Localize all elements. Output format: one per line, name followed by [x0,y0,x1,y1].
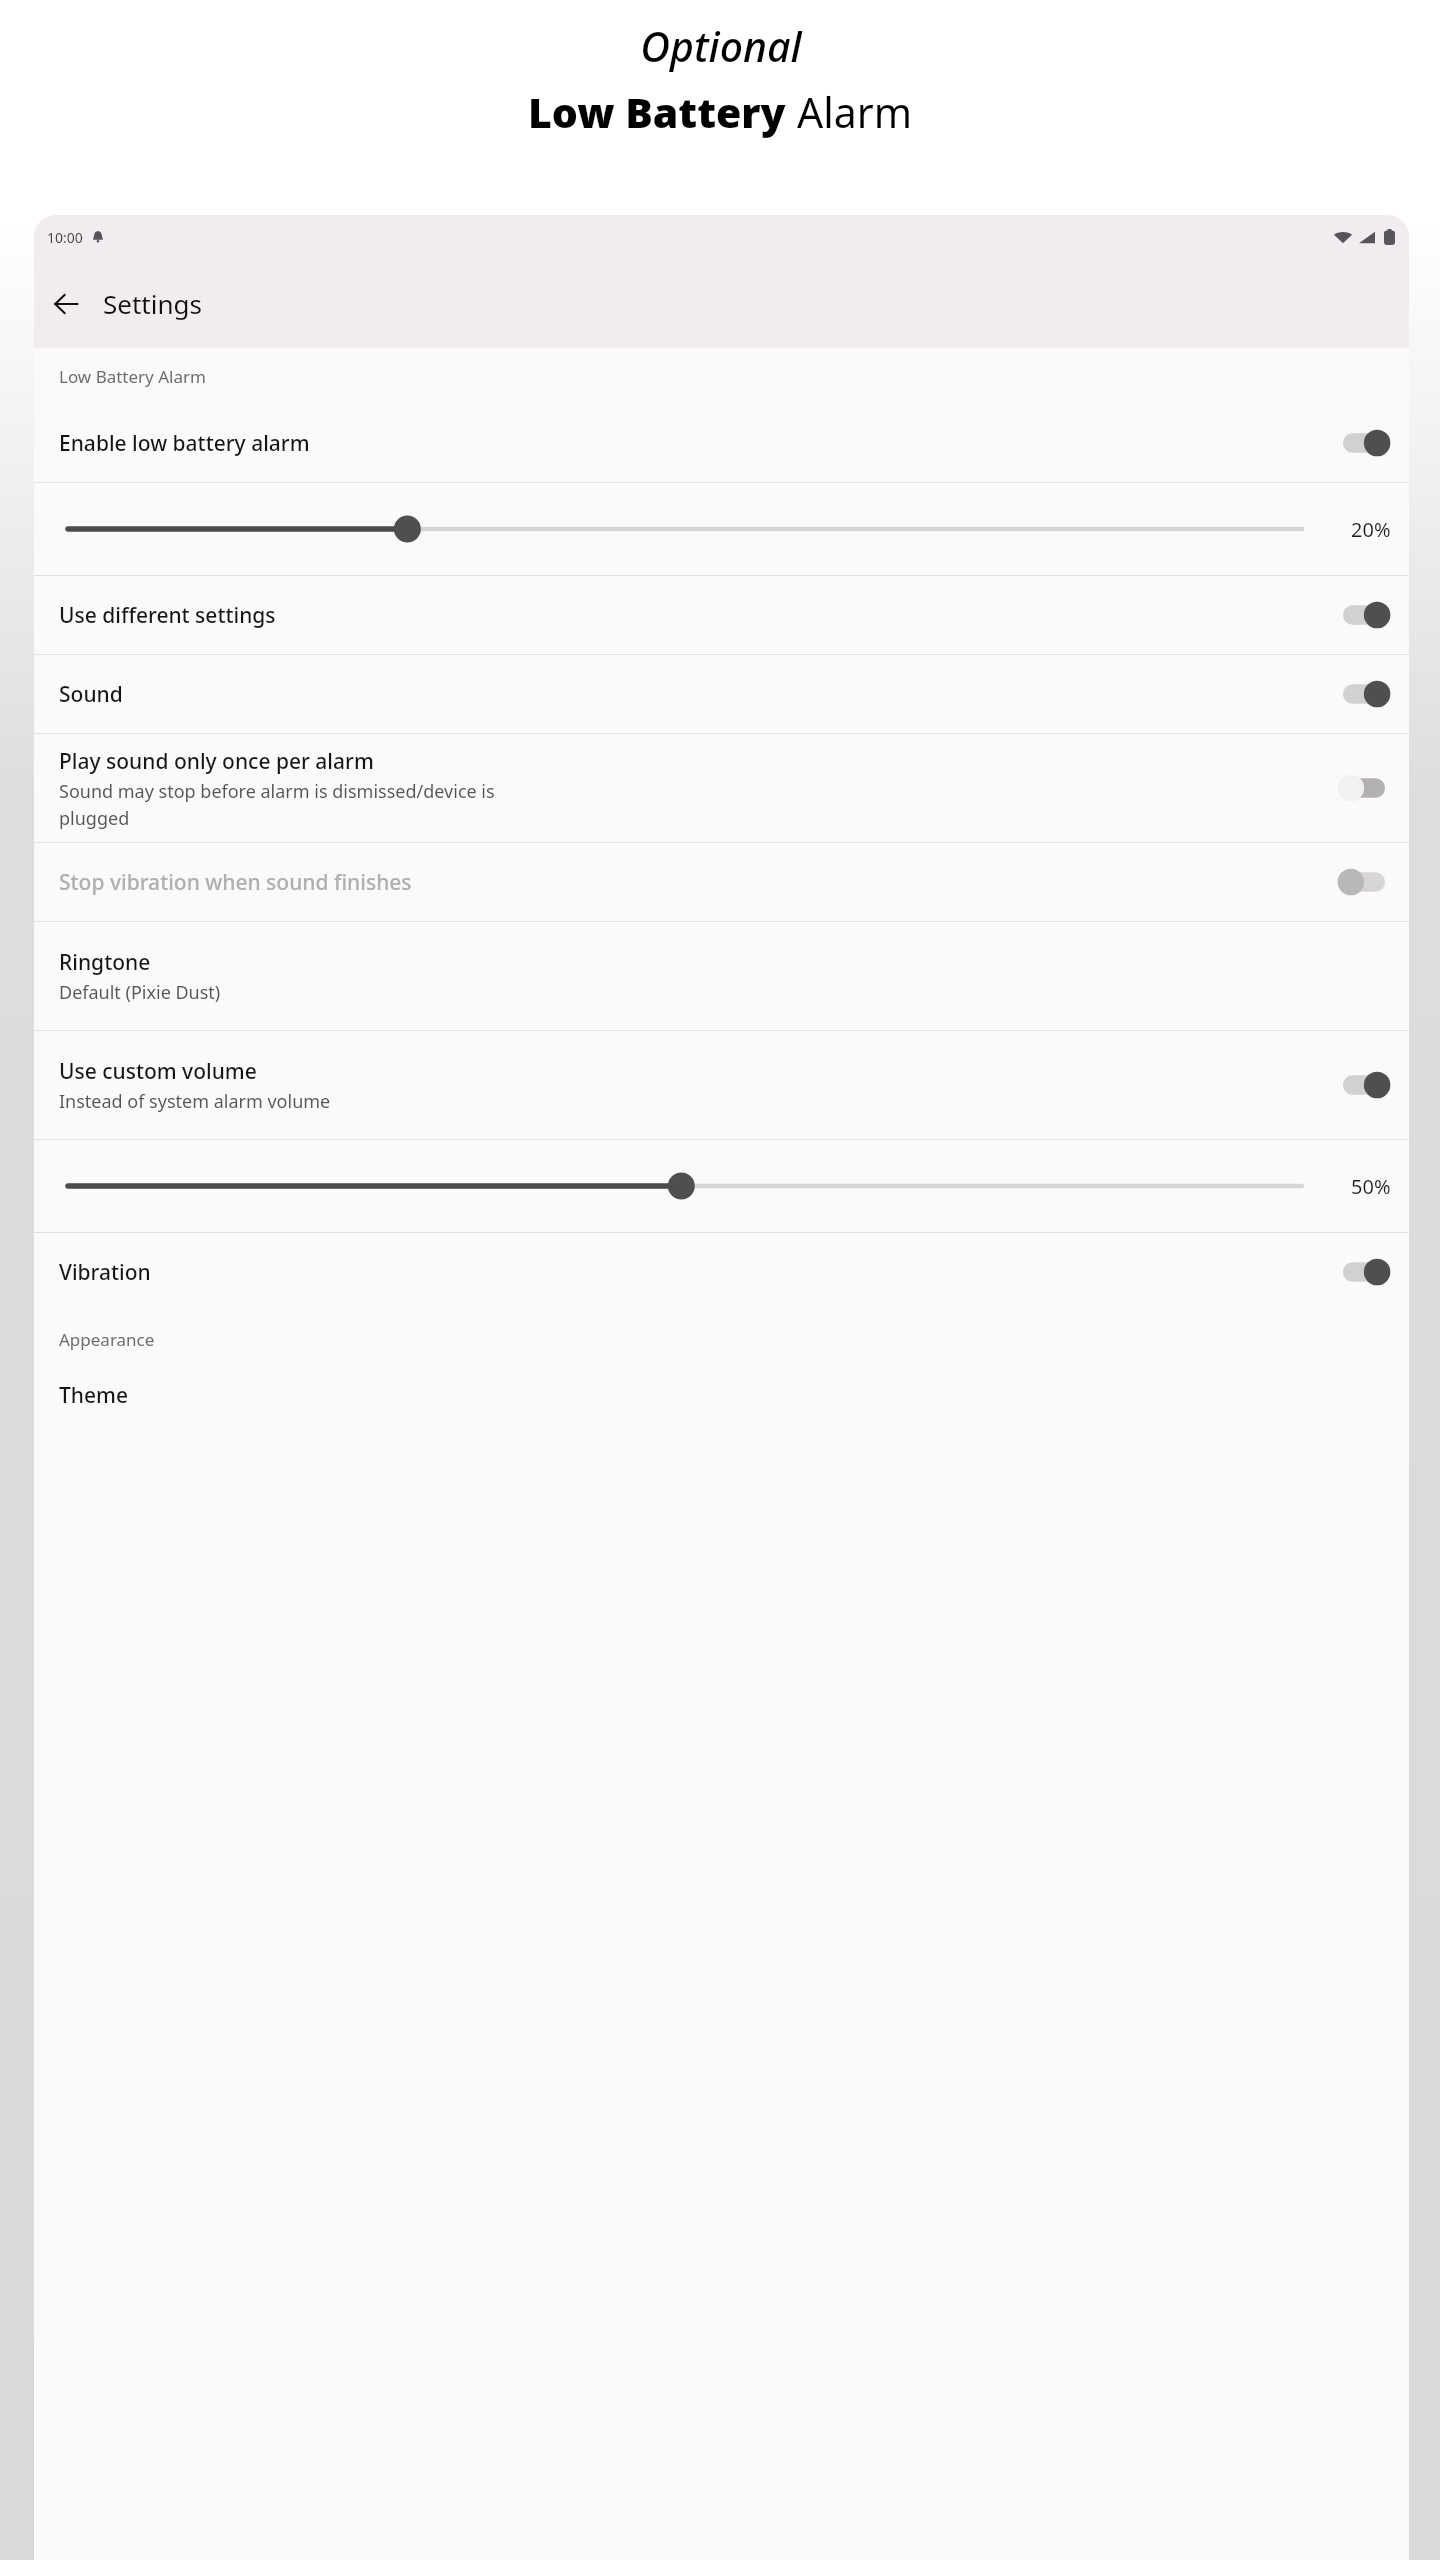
button[interactable]: Vibration [34,1233,1409,1311]
staticText: Play sound only once per alarm [59,747,374,776]
button[interactable]: Stop vibration when sound finishes [34,843,1409,921]
button[interactable]: Enable low battery alarm [34,404,1409,482]
button[interactable]: On [1337,1068,1391,1102]
button[interactable]: Use custom volume [34,1031,1409,1139]
staticText: Sound may stop before alarm is dismissed… [59,779,495,830]
staticText: Vibration [59,1258,151,1287]
staticText: Theme [59,1381,128,1410]
button[interactable]: Off [1337,771,1391,805]
staticText: Settings [103,286,202,321]
button[interactable]: Use different settings [34,576,1409,654]
staticText: Instead of system alarm volume [59,1089,331,1114]
staticText: 20% [1351,516,1391,543]
staticText: Sound [59,680,123,709]
button[interactable]: Off [1337,865,1391,899]
staticText: Stop vibration when sound finishes [59,868,412,897]
staticText: 50% [1351,1173,1391,1200]
staticText: Use custom volume [59,1057,257,1086]
staticText: Alarm [797,84,913,140]
button[interactable]: On [1337,677,1391,711]
button[interactable]: Ringtone [34,922,1409,1030]
button[interactable]: Play sound only once per alarm [34,734,1409,842]
staticText: Appearance [59,1328,155,1351]
staticText: Enable low battery alarm [59,429,310,458]
button[interactable]: 50% [34,1140,1409,1232]
staticText: 10:00 [47,228,83,247]
staticText: Low Battery Alarm [59,365,206,388]
button[interactable]: On [1337,426,1391,460]
staticText: Ringtone [59,948,151,977]
staticText: Default (Pixie Dust) [59,980,221,1005]
staticText: Low Battery [528,84,797,140]
button[interactable]: Sound [34,655,1409,733]
staticText: Optional [640,18,802,74]
button[interactable]: 20% [34,483,1409,575]
button[interactable]: Theme [34,1367,1409,1423]
staticText: Use different settings [59,601,276,630]
button[interactable]: On [1337,1255,1391,1289]
button[interactable]: On [1337,598,1391,632]
button[interactable]: Back [41,279,91,329]
